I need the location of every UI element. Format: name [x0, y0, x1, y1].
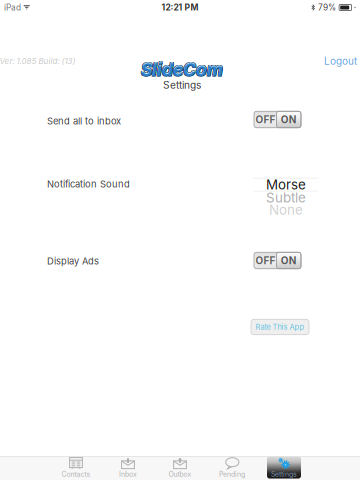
staticText: Display Ads	[47, 255, 99, 267]
button[interactable]: Inbox	[105, 456, 151, 479]
button[interactable]: Pending	[209, 456, 255, 479]
button[interactable]: Logout	[320, 54, 360, 68]
staticText: 12:21 PM	[161, 2, 198, 13]
staticText: SlideCom	[142, 58, 224, 79]
staticText: Contacts	[61, 470, 90, 478]
staticText: Ver: 1.085 Build: (13)	[0, 56, 75, 66]
staticText: SlideCom	[141, 59, 223, 80]
button[interactable]: OFF	[254, 252, 301, 269]
staticText: Settings	[271, 470, 297, 478]
staticText: None	[269, 202, 303, 218]
staticText: ON	[281, 113, 297, 126]
staticText: SlideCom	[142, 60, 224, 81]
button[interactable]: Rate This App	[251, 319, 309, 335]
staticText: ON	[281, 254, 297, 267]
button[interactable]: OFF	[254, 111, 301, 128]
staticText: Logout	[324, 55, 357, 67]
staticText: Inbox	[119, 470, 137, 478]
staticText: SlideCom	[140, 60, 222, 81]
staticText: OFF	[255, 113, 275, 126]
button[interactable]: Settings	[261, 456, 307, 479]
staticText: SlideCom	[141, 59, 223, 80]
staticText: Pending	[219, 470, 245, 478]
button[interactable]: Outbox	[157, 456, 203, 479]
staticText: 79%	[318, 2, 336, 12]
staticText: SlideCom	[140, 58, 222, 79]
button[interactable]: Contacts	[53, 456, 99, 479]
staticText: Send all to inbox	[47, 115, 121, 127]
staticText: Notification Sound	[47, 178, 130, 190]
staticText: Outbox	[168, 470, 191, 478]
staticText: iPad	[4, 2, 21, 12]
staticText: Rate This App	[255, 322, 304, 331]
staticText: Morse	[266, 176, 306, 193]
button[interactable]: Morse	[253, 178, 318, 216]
staticText: Subtle	[266, 189, 306, 206]
staticText: Settings	[163, 79, 201, 91]
staticText: OFF	[255, 254, 275, 267]
